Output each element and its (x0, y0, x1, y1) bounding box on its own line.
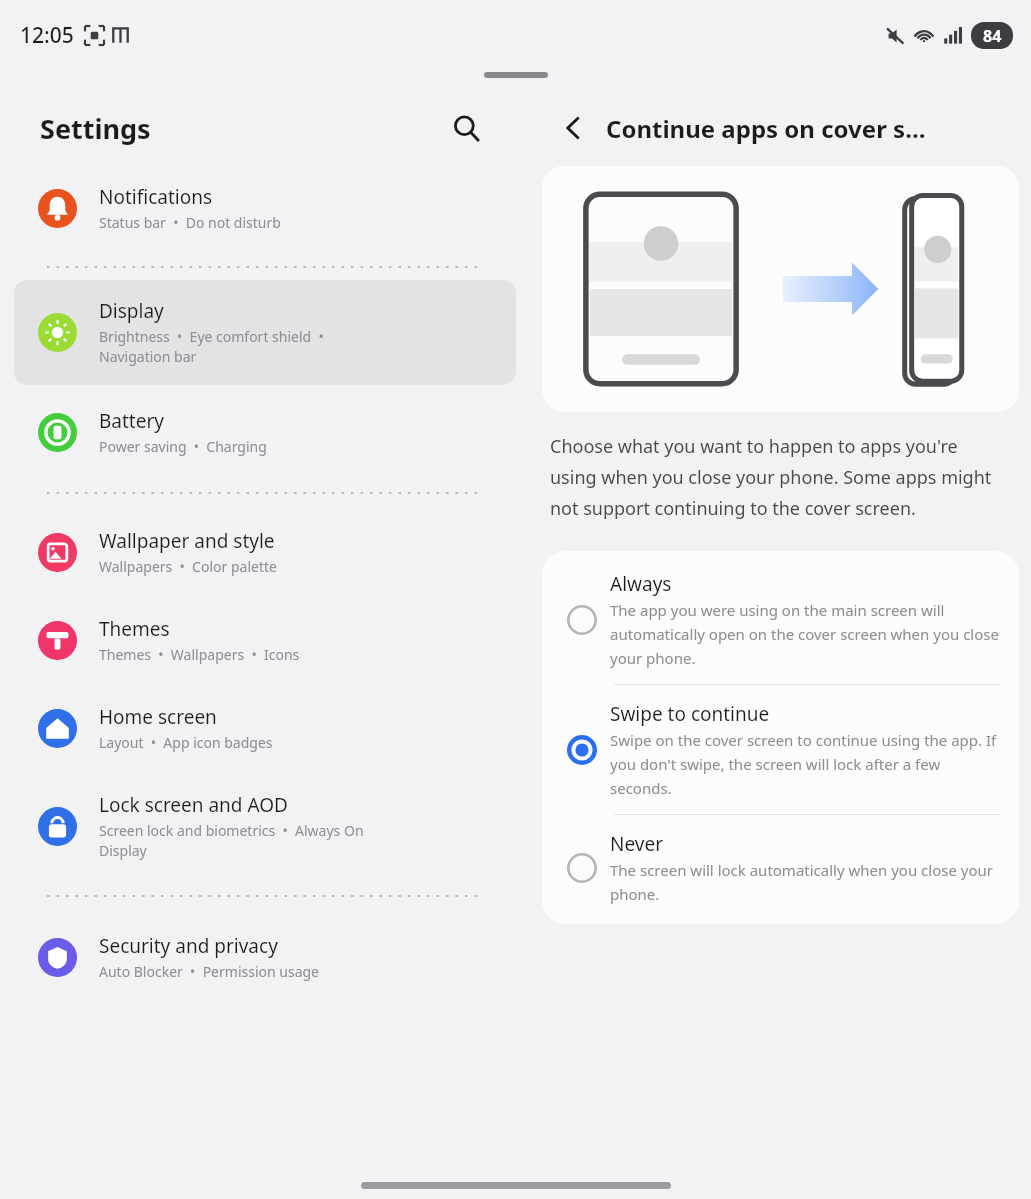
button[interactable]: Lock screen and AOD (14, 778, 516, 875)
staticText: Themes • Wallpapers • Icons (99, 645, 300, 664)
button[interactable]: Security and privacy (14, 919, 516, 995)
staticText: Auto Blocker • Permission usage (99, 962, 319, 981)
staticText: Display (99, 298, 164, 324)
staticText: Lock screen and AOD (99, 792, 288, 818)
staticText: Brightness • Eye comfort shield • Naviga… (99, 327, 324, 367)
button[interactable]: Wallpaper and style (14, 514, 516, 590)
staticText: Notifications (99, 184, 213, 210)
button[interactable]: Never (542, 815, 1019, 920)
button[interactable]: Always (542, 555, 1019, 684)
button[interactable]: Home screen (14, 690, 516, 766)
staticText: Settings (40, 110, 151, 147)
staticText: Security and privacy (99, 933, 278, 959)
button[interactable]: Battery (14, 394, 516, 470)
button[interactable]: Display (14, 280, 516, 385)
staticText: Swipe on the cover screen to continue us… (610, 730, 1003, 798)
button[interactable]: Search (444, 106, 488, 150)
staticText: Wallpapers • Color palette (99, 557, 277, 576)
staticText: Never (610, 831, 663, 857)
staticText: Screen lock and biometrics • Always On D… (99, 821, 364, 861)
staticText: Continue apps on cover s... (606, 112, 926, 145)
staticText: 12:05 (20, 21, 74, 50)
staticText: Power saving • Charging (99, 437, 267, 456)
button[interactable]: Themes (14, 602, 516, 678)
staticText: Themes (99, 616, 170, 642)
staticText: Wallpaper and style (99, 528, 275, 554)
staticText: Status bar • Do not disturb (99, 213, 281, 232)
staticText: 84 (983, 25, 1002, 47)
staticText: Choose what you want to happen to apps y… (550, 434, 1007, 521)
staticText: The screen will lock automatically when … (610, 860, 1003, 904)
staticText: Home screen (99, 704, 217, 730)
staticText: Always (610, 571, 672, 597)
button[interactable]: Notifications (14, 170, 516, 246)
staticText: The app you were using on the main scree… (610, 600, 1003, 668)
staticText: Battery (99, 408, 164, 434)
button[interactable]: Swipe to continue (542, 685, 1019, 814)
staticText: Layout • App icon badges (99, 733, 273, 752)
staticText: Swipe to continue (610, 701, 770, 727)
button[interactable]: Back (552, 106, 596, 150)
